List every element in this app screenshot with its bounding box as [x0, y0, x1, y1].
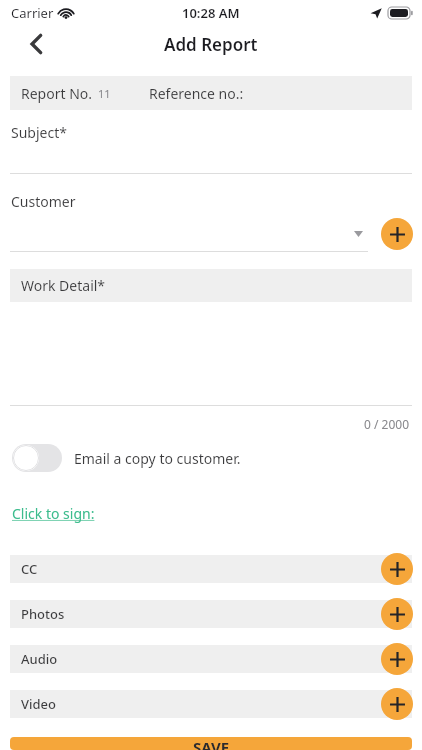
staticText: 10:28 AM	[182, 4, 240, 22]
button[interactable]: Click to sign:	[12, 504, 95, 523]
button[interactable]: Video	[10, 690, 412, 718]
staticText: Email a copy to customer.	[74, 449, 241, 468]
button[interactable]: CC	[10, 555, 412, 583]
button[interactable]: Add Audio	[381, 643, 413, 675]
staticText: Add Report	[164, 33, 258, 56]
staticText: Subject*	[11, 123, 67, 142]
button[interactable]: Photos	[10, 600, 412, 628]
staticText: SAVE	[193, 737, 230, 750]
staticText: Photos	[21, 605, 65, 623]
button[interactable]	[12, 444, 62, 472]
button[interactable]: Add Video	[381, 688, 413, 720]
staticText: Customer	[11, 192, 76, 211]
staticText: Carrier	[11, 4, 54, 22]
staticText: Reference no.:	[149, 84, 244, 103]
button[interactable]: Add Photos	[381, 598, 413, 630]
staticText: Work Detail*	[21, 276, 106, 295]
staticText: CC	[21, 560, 38, 578]
staticText: 11	[98, 86, 111, 101]
staticText: 0 / 2000	[364, 416, 410, 432]
staticText: Report No.	[21, 84, 93, 103]
button[interactable]	[10, 219, 368, 249]
button[interactable]: Add CC	[381, 553, 413, 585]
button[interactable]: Audio	[10, 645, 412, 673]
staticText: Video	[21, 695, 56, 713]
button[interactable]: SAVE	[10, 737, 412, 750]
button[interactable]: Back	[18, 26, 54, 62]
staticText: Audio	[21, 650, 58, 668]
button[interactable]: Add customer	[381, 218, 413, 250]
